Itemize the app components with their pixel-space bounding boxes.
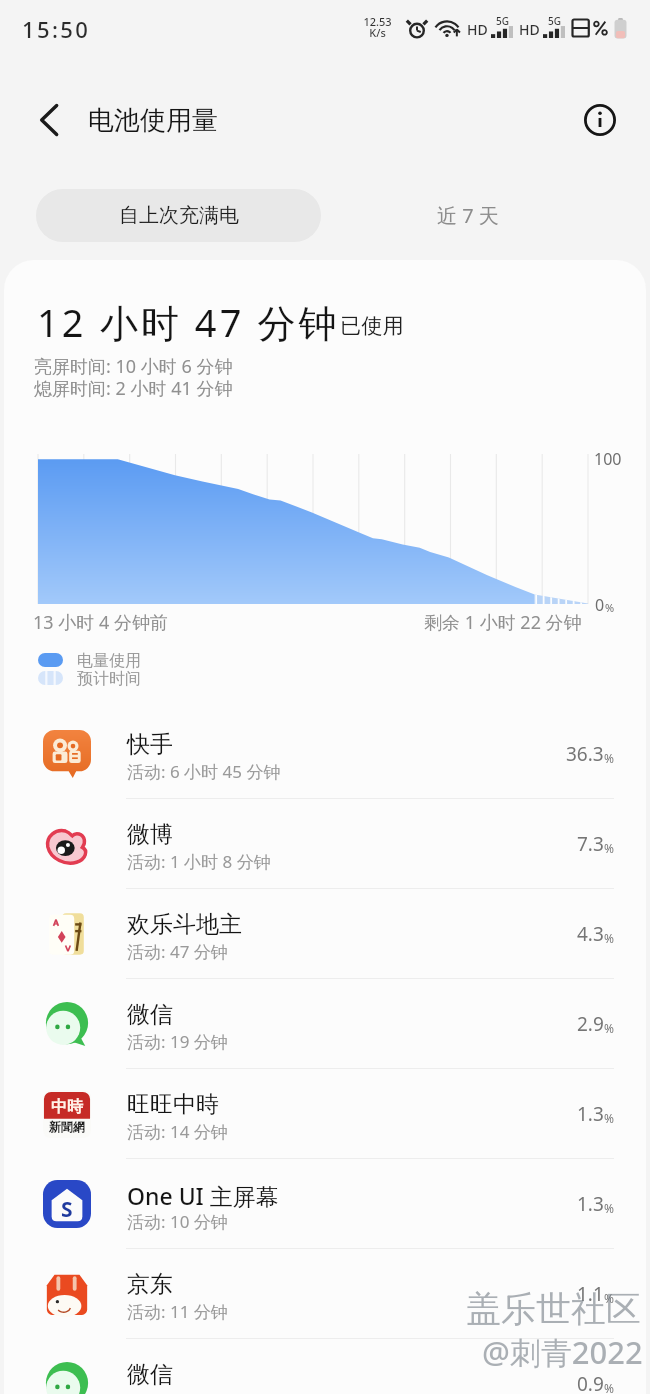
staticText: 新聞網 [49,1119,85,1134]
staticText: 微信 [127,1000,173,1029]
staticText: 100 [594,448,622,470]
staticText: 0 [595,594,605,616]
staticText: % [604,1200,614,1216]
staticText: 1.3 [577,1101,604,1127]
button[interactable]: 微博 [3,799,647,889]
staticText: HD [467,20,488,39]
staticText: % [605,600,615,615]
staticText: 7.3 [577,831,604,857]
staticText: 电池使用量 [88,104,218,137]
button[interactable]: 自上次充满电 [36,189,321,242]
staticText: % [604,1290,614,1306]
staticText: 0.9 [577,1371,604,1394]
staticText: 15:50 [22,14,91,44]
staticText: 亮屏时间: 10 小时 6 分钟 [34,354,233,379]
staticText: % [604,750,614,766]
staticText: 剩余 1 小时 22 分钟 [424,610,582,635]
staticText: 5G [496,14,509,28]
staticText: 1.3 [577,1191,604,1217]
staticText: 近 7 天 [437,202,499,229]
staticText: 活动: 1 小时 8 分钟 [127,850,271,873]
staticText: 微博 [127,820,173,849]
staticText: % [604,1020,614,1036]
staticText: % [604,930,614,946]
staticText: 电量使用 [77,651,141,671]
staticText: 欢乐斗地主 [127,910,242,939]
staticText: 自上次充满电 [119,203,239,228]
staticText: 中時 [51,1097,83,1117]
staticText: 活动: 47 分钟 [127,940,228,963]
staticText: 2.9 [577,1011,604,1037]
staticText: 12.53 K/s [363,14,392,41]
button[interactable]: 中時 [3,1069,647,1159]
staticText: 活动: 11 分钟 [127,1300,228,1323]
staticText: S [61,1195,73,1224]
staticText: 活动: 14 分钟 [127,1120,228,1143]
staticText: 预计时间 [77,669,141,689]
staticText: 1.1 [577,1281,604,1307]
button[interactable]: 欢乐斗地主 [3,889,647,979]
staticText: % [604,1380,614,1394]
staticText: @刺青2022 [482,1331,643,1373]
button[interactable]: Information [577,97,623,143]
staticText: 京东 [127,1270,173,1299]
staticText: 已使用 [340,313,404,339]
staticText: HD [519,20,540,39]
staticText: 4.3 [577,921,604,947]
staticText: 活动: 6 小时 45 分钟 [127,760,281,783]
staticText: 5G [548,14,561,28]
button[interactable]: 近 7 天 [345,189,590,242]
staticText: 36.3 [566,741,604,767]
staticText: 活动: 10 分钟 [127,1210,228,1233]
button[interactable]: 京东 [3,1249,647,1339]
button[interactable]: 微信 [3,979,647,1069]
button[interactable]: S [3,1159,647,1249]
staticText: 13 小时 4 分钟前 [33,610,168,635]
staticText: % [604,840,614,856]
staticText: 快手 [127,730,173,759]
button[interactable]: Back [22,96,70,144]
button[interactable]: 微信 [3,1339,647,1394]
staticText: 熄屏时间: 2 小时 41 分钟 [34,376,233,401]
staticText: % [604,1110,614,1126]
staticText: 12 小时 47 分钟 [37,296,340,348]
staticText: 活动: 19 分钟 [127,1030,228,1053]
staticText: One UI 主屏幕 [127,1180,279,1211]
staticText: 微信 [127,1360,173,1389]
staticText: 旺旺中時 [127,1090,219,1119]
staticText: 盖乐世社区 [466,1287,641,1331]
button[interactable]: 快手 [3,709,647,799]
